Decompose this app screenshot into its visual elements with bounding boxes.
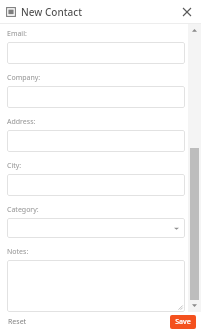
button[interactable] [7, 86, 185, 108]
button[interactable]: Reset [4, 314, 31, 330]
staticText: Company: [7, 73, 41, 83]
staticText: Email: [7, 29, 27, 39]
staticText: Category: [7, 205, 39, 215]
button[interactable]: Save [170, 315, 196, 329]
button[interactable] [7, 260, 185, 312]
button[interactable] [7, 130, 185, 152]
staticText: Reset [8, 317, 27, 327]
staticText: Address: [7, 117, 36, 127]
staticText: New Contact [21, 5, 82, 19]
staticText: Save [175, 317, 191, 327]
button[interactable] [7, 174, 185, 196]
staticText: City: [7, 161, 22, 171]
button[interactable]: Scroll up [188, 24, 201, 37]
button[interactable]: Close [177, 2, 197, 22]
button[interactable] [7, 42, 185, 64]
staticText: Notes: [7, 247, 29, 257]
button[interactable]: Category dropdown [7, 218, 185, 238]
button[interactable]: Scroll down [188, 299, 201, 312]
